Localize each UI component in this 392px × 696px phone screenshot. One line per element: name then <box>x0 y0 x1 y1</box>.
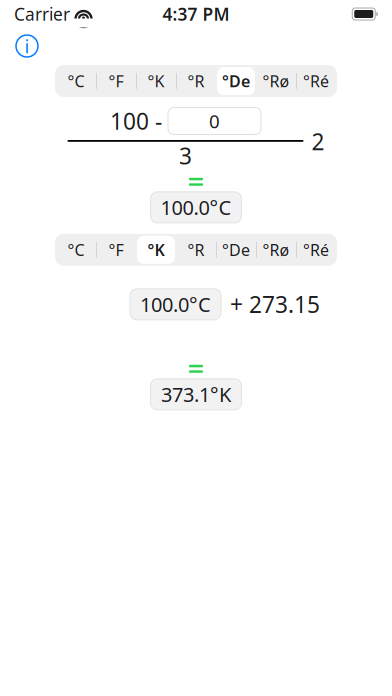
button[interactable]: °K <box>136 234 176 266</box>
staticText: °Ré <box>303 70 329 92</box>
staticText: 100 - <box>110 106 162 136</box>
button[interactable]: °F <box>96 234 136 266</box>
staticText: i <box>24 34 29 58</box>
staticText: °R <box>187 70 204 92</box>
button[interactable]: °Ré <box>296 65 336 97</box>
staticText: °De <box>222 239 250 260</box>
staticText: 100.0°C <box>140 291 211 318</box>
button[interactable]: °C <box>56 65 96 97</box>
staticText: °Ré <box>303 239 329 260</box>
button[interactable]: °Rø <box>256 234 296 266</box>
staticText: 373.1°K <box>161 381 231 408</box>
staticText: 3 <box>179 141 192 171</box>
staticText: 2 <box>311 126 324 156</box>
button[interactable]: °Rø <box>256 65 296 97</box>
button[interactable]: 0 <box>168 107 261 134</box>
staticText: Carrier <box>14 2 70 25</box>
staticText: °K <box>147 239 164 260</box>
button[interactable]: Information <box>9 28 45 64</box>
staticText: °F <box>108 70 123 92</box>
staticText: °C <box>67 70 84 92</box>
staticText: + 273.15 <box>230 289 320 319</box>
button[interactable]: °C <box>56 234 96 266</box>
button[interactable]: °Ré <box>296 234 336 266</box>
staticText: 4:37 PM <box>162 2 229 25</box>
staticText: °F <box>108 239 123 260</box>
staticText: °C <box>67 239 84 260</box>
button[interactable]: °De <box>216 234 256 266</box>
staticText: °K <box>147 70 164 92</box>
staticText: °De <box>222 70 250 92</box>
staticText: 0 <box>209 109 220 133</box>
staticText: °R <box>187 239 204 260</box>
button[interactable]: °R <box>176 234 216 266</box>
staticText: °Rø <box>262 70 289 92</box>
button[interactable]: °R <box>176 65 216 97</box>
button[interactable]: °F <box>96 65 136 97</box>
button[interactable]: °K <box>136 65 176 97</box>
staticText: °Rø <box>262 239 289 260</box>
staticText: 100.0°C <box>160 194 231 221</box>
button[interactable]: °De <box>216 65 256 97</box>
